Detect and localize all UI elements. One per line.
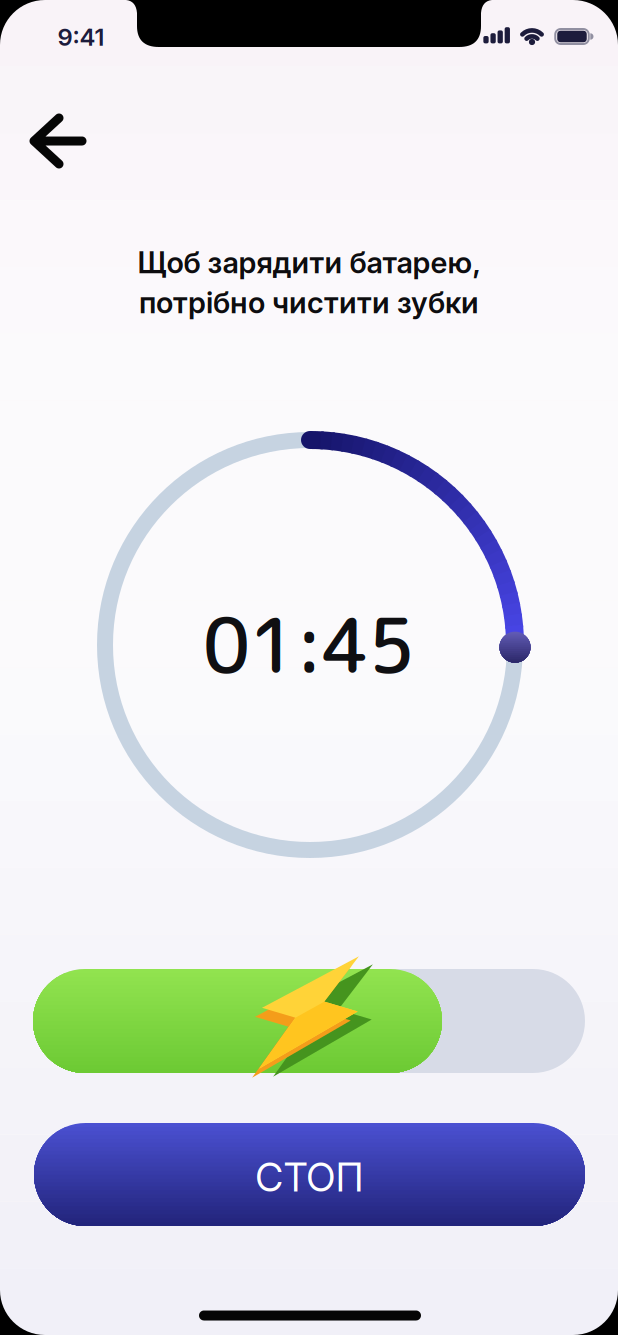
staticText: 01:45 — [203, 592, 415, 697]
staticText: потрібно чистити зубки — [139, 285, 479, 320]
button[interactable]: СТОП — [34, 1123, 585, 1226]
staticText: 9:41 — [57, 22, 104, 51]
staticText: Щоб зарядити батарею, — [137, 245, 480, 280]
button[interactable]: Back — [24, 114, 92, 168]
staticText: СТОП — [255, 1154, 364, 1201]
